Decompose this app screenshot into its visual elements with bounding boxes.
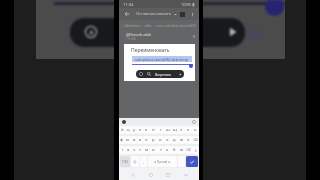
button[interactable]: д	[171, 136, 178, 144]
button[interactable]: о	[157, 136, 164, 144]
staticText: OK	[247, 26, 263, 41]
staticText: г	[160, 127, 162, 133]
staticText: е	[145, 127, 148, 133]
staticText: б	[173, 147, 176, 153]
staticText: у	[133, 127, 136, 133]
button[interactable]: ж	[178, 136, 185, 144]
button[interactable]: ш	[164, 126, 171, 134]
staticText: м	[145, 147, 149, 153]
button[interactable]: Enter	[186, 156, 198, 167]
button[interactable]: ⌫	[185, 146, 192, 154]
staticText: й	[121, 127, 124, 133]
staticText: 11:04	[123, 2, 134, 7]
staticText: ъ	[194, 127, 197, 133]
staticText: ?123	[122, 160, 128, 164]
button[interactable]: ?123	[120, 156, 130, 167]
button[interactable]: ю	[178, 146, 185, 154]
button[interactable]: Hide keyboard	[181, 170, 190, 179]
staticText: э	[187, 137, 190, 143]
button[interactable]: р	[150, 136, 157, 144]
button[interactable]: а	[137, 136, 143, 144]
button[interactable]: ь	[164, 146, 171, 154]
staticText: в	[133, 137, 136, 143]
button[interactable]: ф	[119, 136, 125, 144]
button[interactable]: Recents	[163, 170, 172, 179]
staticText: а	[139, 137, 142, 143]
staticText: ы	[126, 137, 130, 143]
staticText: щ	[173, 127, 177, 133]
button[interactable]: ☺	[131, 156, 139, 167]
button[interactable]: у	[131, 126, 137, 134]
staticText: ю	[180, 147, 184, 153]
button[interactable]: б	[171, 146, 178, 154]
button[interactable]: ,	[140, 156, 147, 167]
button[interactable]: ъ	[192, 126, 199, 134]
button[interactable]: ⇧	[119, 146, 125, 154]
staticText: ш	[166, 127, 170, 133]
staticText: ⊕ Русский ⊕	[154, 160, 171, 164]
staticText: ф	[120, 137, 124, 143]
button[interactable]: х	[185, 126, 192, 134]
staticText: ч	[133, 147, 136, 153]
staticText: р	[152, 137, 155, 143]
staticText: н	[152, 127, 155, 133]
button[interactable]: т	[157, 146, 164, 154]
staticText: ё	[195, 148, 197, 153]
button[interactable]: ч	[131, 146, 137, 154]
staticText: 0	[193, 34, 196, 39]
button[interactable]: п	[143, 136, 150, 144]
button[interactable]: я	[125, 146, 131, 154]
button[interactable]: з	[178, 126, 185, 134]
button[interactable]: ⌫	[192, 136, 199, 144]
button[interactable]: г	[157, 126, 164, 134]
other: Google	[122, 120, 126, 124]
other: More options	[190, 12, 195, 17]
staticText: Основная память	[136, 11, 172, 17]
staticText: ⌫	[186, 148, 191, 152]
staticText: т	[160, 147, 162, 153]
button[interactable]: ы	[125, 136, 131, 144]
button[interactable]: Back	[119, 8, 199, 20]
staticText: к	[139, 127, 142, 133]
staticText: ц	[127, 127, 130, 133]
button[interactable]: к	[137, 126, 143, 134]
staticText: о	[159, 137, 162, 143]
button[interactable]: с	[137, 146, 143, 154]
staticText: ☺	[133, 160, 137, 164]
button[interactable]: ё	[192, 146, 199, 154]
button[interactable]: л	[164, 136, 171, 144]
button[interactable]: м	[143, 146, 150, 154]
button[interactable]: н	[150, 126, 157, 134]
staticText: Переименовать	[131, 47, 170, 54]
button[interactable]: е	[143, 126, 150, 134]
staticText: с	[139, 147, 142, 153]
staticText: ⌫	[193, 138, 198, 142]
staticText: ‹ /Android › obb › com.adelbot.standsff2	[121, 23, 196, 28]
button[interactable]: @0vnerk.obb	[119, 30, 199, 42]
button[interactable]: и	[150, 146, 157, 154]
staticText: ж	[180, 137, 184, 143]
button[interactable]: ⊕ Русский ⊕	[148, 156, 177, 167]
staticText: ⇧	[121, 148, 124, 152]
button[interactable]: ц	[125, 126, 131, 134]
staticText: л	[166, 137, 169, 143]
button[interactable]: Home	[146, 170, 155, 179]
staticText: 1.8 MB	[126, 37, 136, 41]
button[interactable]: щ	[171, 126, 178, 134]
button[interactable]: Back	[128, 170, 137, 179]
staticText: 100% ▮	[181, 2, 195, 7]
staticText: я	[127, 147, 130, 153]
button[interactable]: в	[131, 136, 137, 144]
staticText: sah.aiebot.standsff2.obb.temp	[135, 57, 189, 62]
staticText: @0vnerk.obb	[126, 32, 151, 37]
other: Back	[124, 11, 130, 17]
button[interactable]: й	[119, 126, 125, 134]
staticText: х	[187, 127, 190, 133]
staticText: д	[173, 137, 176, 143]
button[interactable]: э	[185, 136, 192, 144]
other: More	[179, 73, 182, 76]
other: Search	[147, 72, 151, 76]
staticText: .	[181, 159, 182, 164]
